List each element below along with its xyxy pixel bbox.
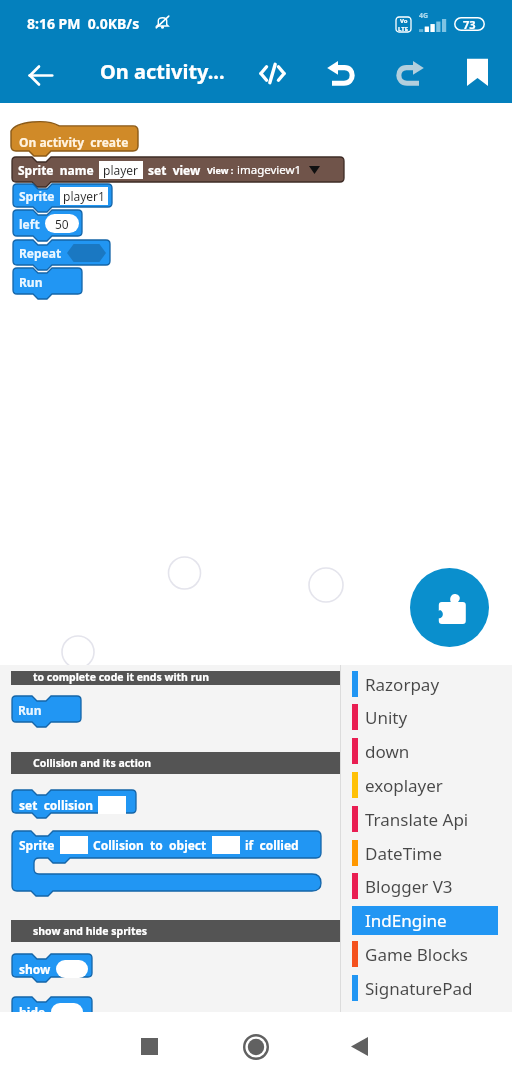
staticText: On activity create: [19, 134, 129, 150]
button[interactable]: Bookmark: [455, 50, 499, 94]
staticText: Collision to object: [93, 837, 207, 853]
button[interactable]: exoplayer: [341, 769, 512, 803]
staticText: 50: [55, 216, 69, 232]
staticText: set view: [148, 162, 201, 178]
button[interactable]: Back: [17, 56, 63, 94]
button[interactable]: Add block: [410, 568, 489, 647]
staticText: On activity...: [100, 58, 225, 85]
button[interactable]: Recent apps: [125, 1022, 174, 1071]
staticText: left: [19, 216, 40, 232]
staticText: imageview1: [237, 162, 302, 178]
staticText: Run: [18, 702, 42, 718]
button[interactable]: Razorpay: [341, 668, 512, 702]
staticText: down: [365, 740, 410, 763]
button[interactable]: View code: [249, 50, 295, 96]
staticText: 73: [463, 17, 476, 31]
staticText: exoplayer: [365, 774, 443, 797]
staticText: Blogger V3: [365, 875, 453, 898]
staticText: show: [19, 961, 51, 977]
staticText: DateTime: [365, 842, 442, 865]
staticText: View :: [207, 164, 234, 176]
button[interactable]: down: [341, 735, 512, 769]
staticText: show and hide sprites: [33, 924, 148, 938]
staticText: Sprite: [19, 188, 55, 204]
button[interactable]: Blogger V3: [341, 870, 512, 904]
staticText: Razorpay: [365, 673, 440, 696]
staticText: 8:16 PM 0.0KB/s: [27, 14, 140, 33]
staticText: to complete code it ends with run: [33, 670, 210, 684]
staticText: Collision and its action: [33, 756, 152, 770]
button[interactable]: Unity: [341, 701, 512, 735]
button[interactable]: Game Blocks: [341, 938, 512, 972]
staticText: Sprite name: [18, 162, 94, 178]
button[interactable]: Home: [231, 1022, 280, 1071]
button[interactable]: Back: [335, 1022, 384, 1071]
button[interactable]: Translate Api: [341, 803, 512, 837]
button[interactable]: SignaturePad: [341, 972, 512, 1006]
staticText: Game Blocks: [365, 943, 468, 966]
staticText: Repeat: [19, 245, 62, 261]
button[interactable]: On activity...: [100, 58, 225, 85]
staticText: player1: [63, 188, 105, 204]
staticText: LTE: [398, 25, 409, 32]
staticText: SignaturePad: [365, 977, 473, 1000]
staticText: set collision: [19, 797, 93, 813]
button[interactable]: Redo: [387, 50, 433, 96]
staticText: Unity: [365, 706, 408, 729]
staticText: Vo: [400, 17, 408, 25]
staticText: if collied: [245, 837, 299, 853]
staticText: 4G: [419, 11, 429, 21]
button[interactable]: Undo: [318, 50, 364, 96]
staticText: player: [103, 162, 139, 178]
staticText: Run: [19, 274, 43, 290]
staticText: IndEngine: [365, 909, 447, 932]
staticText: hide: [19, 1004, 46, 1020]
button[interactable]: DateTime: [341, 837, 512, 871]
staticText: Translate Api: [365, 808, 469, 831]
staticText: Sprite: [19, 837, 55, 853]
button[interactable]: IndEngine: [341, 904, 512, 938]
